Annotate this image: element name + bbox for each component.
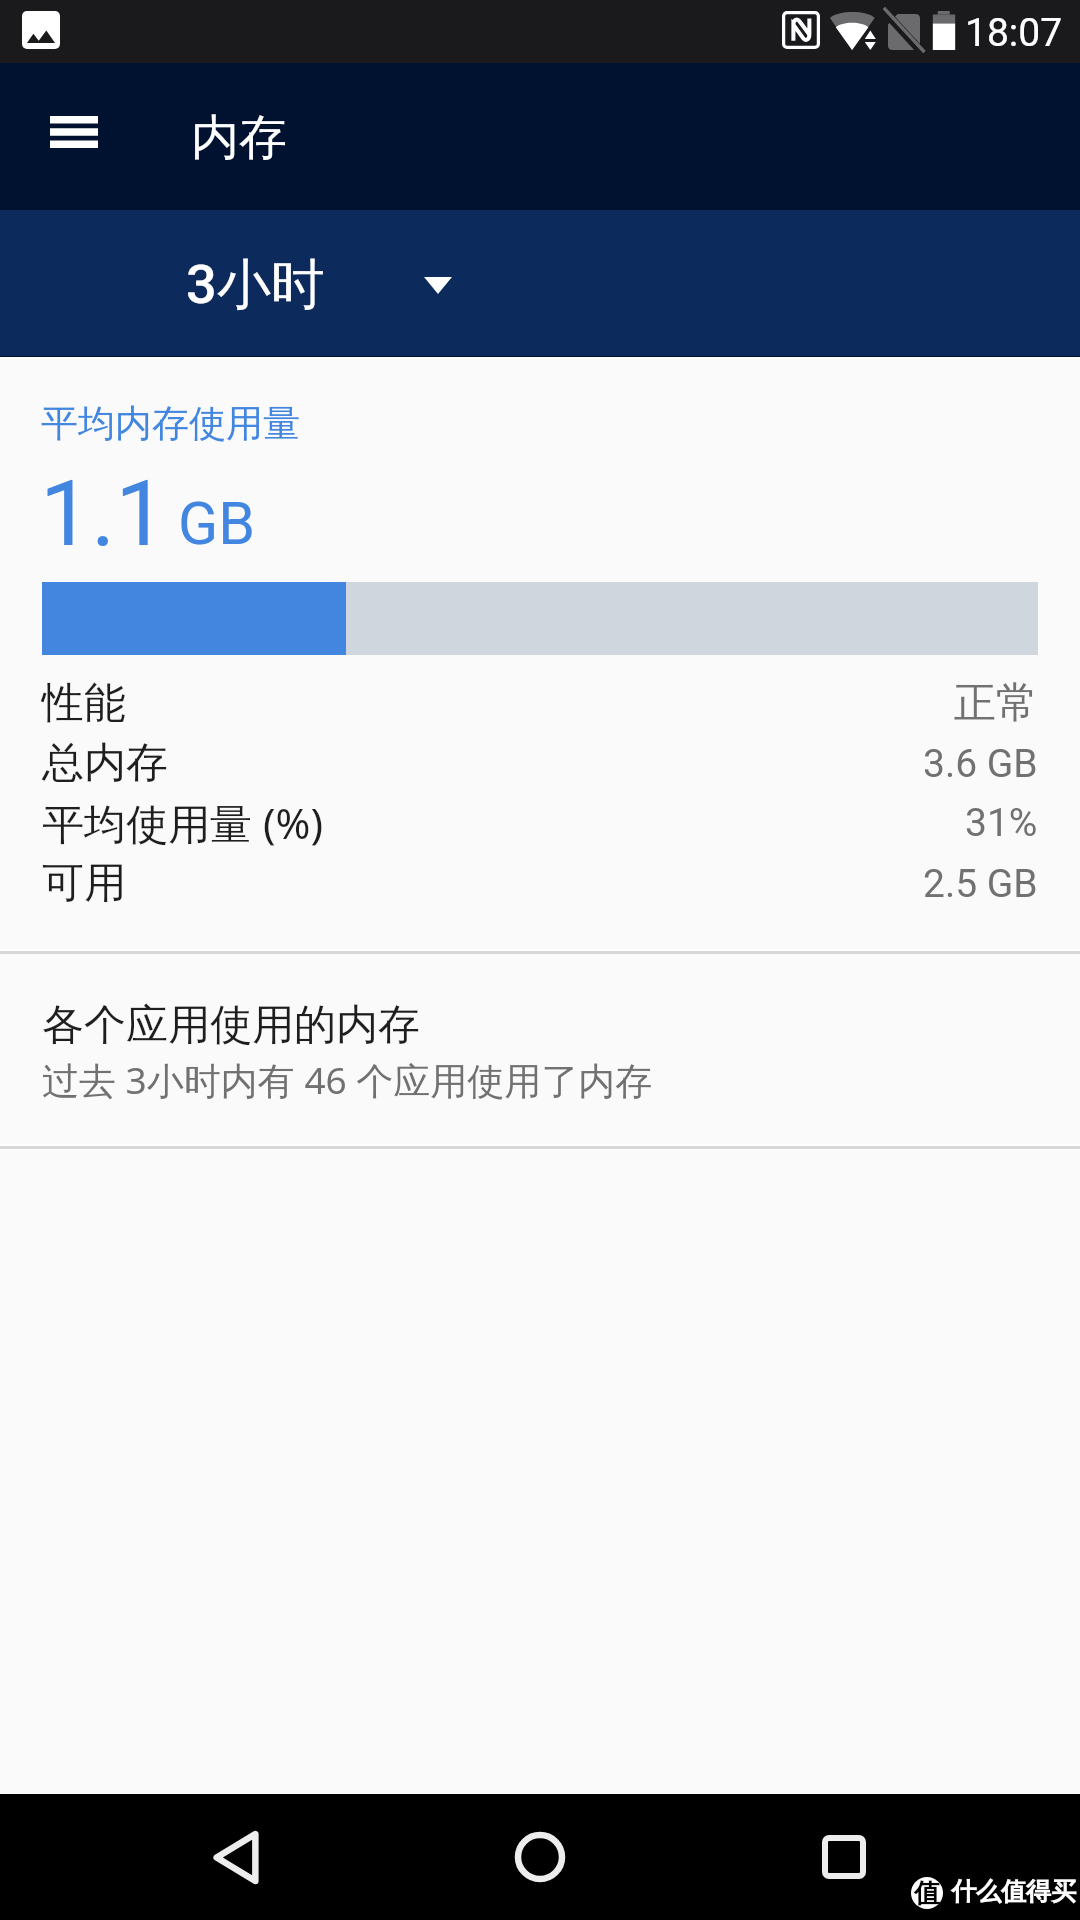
button[interactable]: Open navigation menu — [26, 84, 122, 180]
staticText: 总内存 — [42, 737, 168, 790]
staticText: 正常 — [954, 677, 1038, 730]
staticText: 平均内存使用量 — [41, 400, 300, 447]
staticText: 性能 — [42, 677, 126, 730]
staticText: GB — [178, 489, 255, 558]
button[interactable]: 各个应用使用的内存 — [0, 953, 1080, 1147]
staticText: 可用 — [42, 857, 126, 910]
staticText: 18:07 — [965, 10, 1063, 56]
staticText: 平均使用量 (%) — [42, 794, 324, 851]
staticText: 3.6 GB — [923, 741, 1038, 787]
staticText: 过去 3小时内有 46 个应用使用了内存 — [42, 1054, 653, 1105]
staticText: 各个应用使用的内存 — [42, 999, 420, 1052]
button[interactable]: Back — [180, 1802, 292, 1912]
staticText: 2.5 GB — [923, 861, 1038, 907]
staticText: 什么值得买 — [951, 1876, 1076, 1907]
staticText: 1.1 — [40, 461, 167, 568]
staticText: 3小时 — [186, 251, 325, 319]
button[interactable]: Home — [484, 1802, 596, 1912]
staticText: 值 — [914, 1877, 940, 1909]
staticText: 31% — [965, 800, 1038, 846]
button[interactable]: 3小时 — [0, 210, 1080, 356]
button[interactable]: Recent apps — [788, 1802, 900, 1912]
staticText: 内存 — [191, 108, 287, 168]
